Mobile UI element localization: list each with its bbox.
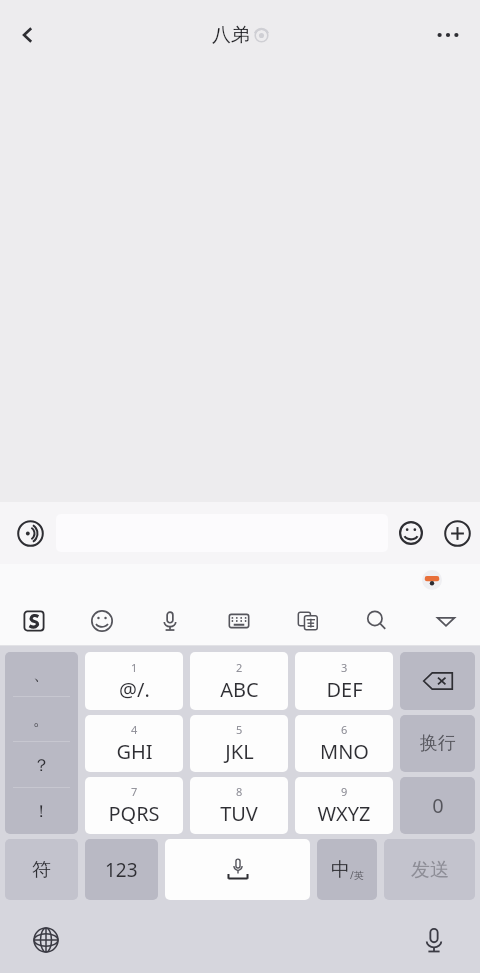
button[interactable]: 0 [400, 777, 475, 834]
button[interactable]: Switch language [317, 839, 377, 900]
button[interactable]: Hide keyboard [411, 596, 480, 645]
staticText: 中 [331, 858, 350, 882]
staticText: 4 [131, 722, 138, 737]
staticText: 八弟 [212, 23, 250, 47]
button[interactable]: Input method [0, 596, 68, 645]
staticText: 换行 [420, 732, 456, 755]
staticText: 9 [341, 784, 348, 799]
button[interactable]: 1 [85, 652, 183, 710]
staticText: JKL [225, 738, 254, 765]
button[interactable]: 、 [5, 652, 78, 697]
button[interactable]: Space [165, 839, 310, 900]
staticText: 123 [105, 857, 138, 883]
button[interactable]: 5 [190, 715, 288, 772]
staticText: DEF [326, 676, 363, 703]
staticText: 8 [236, 784, 243, 799]
button[interactable]: Language [24, 918, 68, 962]
staticText: @/. [119, 676, 150, 703]
button[interactable]: Backspace [400, 652, 475, 710]
button[interactable]: 换行 [400, 715, 475, 772]
button[interactable]: 4 [85, 715, 183, 772]
staticText: 2 [236, 660, 243, 675]
staticText: /英 [350, 868, 364, 882]
button[interactable]: 符 [5, 839, 78, 900]
button[interactable]: More [434, 510, 480, 556]
button[interactable]: 9 [295, 777, 393, 834]
button[interactable]: 123 [85, 839, 158, 900]
button[interactable]: 6 [295, 715, 393, 772]
button[interactable]: Voice [136, 596, 204, 645]
staticText: WXYZ [317, 800, 371, 827]
staticText: 、 [33, 664, 50, 685]
button[interactable]: 2 [190, 652, 288, 710]
staticText: MNO [320, 738, 369, 765]
button[interactable]: 发送 [384, 839, 475, 900]
button[interactable]: 7 [85, 777, 183, 834]
staticText: ？ [33, 755, 50, 776]
button[interactable]: Voice [412, 918, 456, 962]
staticText: 5 [236, 722, 243, 737]
button[interactable]: Emoji [68, 596, 136, 645]
staticText: 1 [131, 660, 138, 675]
button[interactable]: 3 [295, 652, 393, 710]
staticText: 。 [33, 709, 50, 730]
button[interactable]: Sticker [422, 570, 442, 590]
button[interactable]: Back [4, 11, 52, 59]
staticText: 7 [131, 784, 138, 799]
button[interactable]: Emoji [388, 510, 434, 556]
staticText: 6 [341, 722, 348, 737]
staticText: 3 [341, 660, 348, 675]
staticText: ！ [33, 801, 50, 822]
staticText: PQRS [108, 800, 160, 827]
button[interactable]: Voice input [6, 509, 54, 557]
button[interactable]: More options [424, 11, 472, 59]
staticText: 符 [32, 858, 51, 882]
button[interactable]: Search [342, 596, 411, 645]
button[interactable]: ？ [5, 742, 78, 788]
button[interactable]: 。 [5, 697, 78, 742]
staticText: GHI [116, 738, 153, 765]
button[interactable]: 8 [190, 777, 288, 834]
staticText: TUV [220, 800, 258, 827]
button[interactable]: Translate [273, 596, 342, 645]
button[interactable]: ！ [5, 788, 78, 834]
button[interactable]: Keyboard [204, 596, 273, 645]
staticText: ABC [220, 676, 259, 703]
staticText: 发送 [411, 858, 449, 882]
staticText: 0 [432, 792, 444, 819]
